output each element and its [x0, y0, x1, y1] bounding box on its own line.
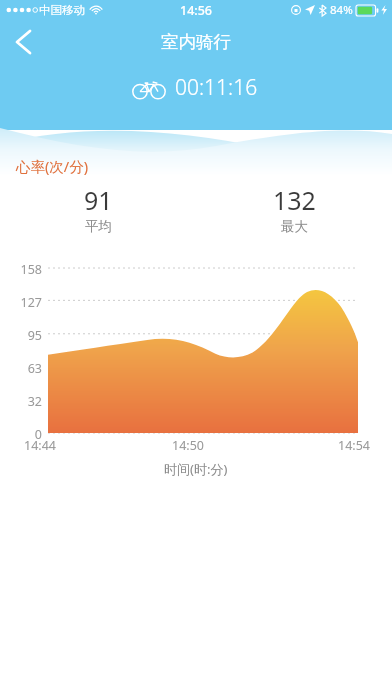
staticText: 时间(时:分) [164, 460, 228, 478]
staticText: 132 [273, 183, 316, 217]
other: Cycling [134, 78, 164, 98]
staticText: 63 [0, 360, 42, 377]
button[interactable]: 132 [196, 183, 392, 235]
staticText: 127 [0, 294, 42, 311]
staticText: 心率(次/分) [16, 156, 89, 176]
staticText: 最大 [281, 218, 308, 235]
staticText: 91 [84, 183, 113, 217]
staticText: 158 [0, 261, 42, 278]
staticText: 95 [0, 327, 42, 344]
staticText: 14:44 [24, 437, 56, 454]
staticText: 14:54 [338, 437, 370, 454]
staticText: 32 [0, 393, 42, 410]
button[interactable]: Back [0, 20, 46, 64]
staticText: 中国移动 [39, 3, 85, 17]
staticText: 00:11:16 [175, 73, 258, 102]
staticText: 14:56 [180, 2, 213, 19]
staticText: 室内骑行 [161, 31, 231, 53]
button[interactable]: 91 [0, 183, 196, 235]
staticText: 平均 [85, 218, 112, 235]
staticText: 0 [0, 426, 42, 443]
staticText: 84% [330, 2, 353, 18]
staticText: 14:50 [172, 437, 204, 454]
